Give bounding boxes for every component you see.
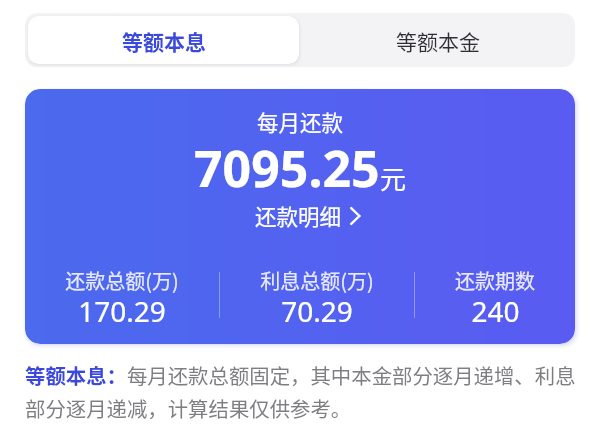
staticText: 等额本金 (396, 26, 480, 56)
button[interactable]: 还款明细 (255, 200, 360, 231)
button[interactable]: 等额本金 (300, 13, 575, 67)
staticText: 170.29 (78, 292, 166, 330)
staticText: 7095.25 (194, 134, 380, 202)
staticText: 还款总额(万) (65, 266, 179, 295)
other: Repayment details (350, 207, 360, 225)
staticText: 等额本息 (122, 26, 206, 56)
staticText: 元 (380, 159, 407, 197)
staticText: 每月还款 (257, 106, 344, 137)
staticText: 还款明细 (255, 200, 342, 231)
staticText: 等额本息：每月还款总额固定，其中本金部分逐月递增、利息部分逐月递减，计算结果仅供… (25, 360, 583, 423)
staticText: 240 (471, 292, 520, 330)
staticText: 利息总额(万) (260, 266, 374, 295)
button[interactable]: 等额本息 (28, 16, 299, 64)
button[interactable]: 每月还款 (25, 89, 575, 344)
staticText: 还款期数 (455, 266, 535, 295)
staticText: 70.29 (281, 292, 353, 330)
